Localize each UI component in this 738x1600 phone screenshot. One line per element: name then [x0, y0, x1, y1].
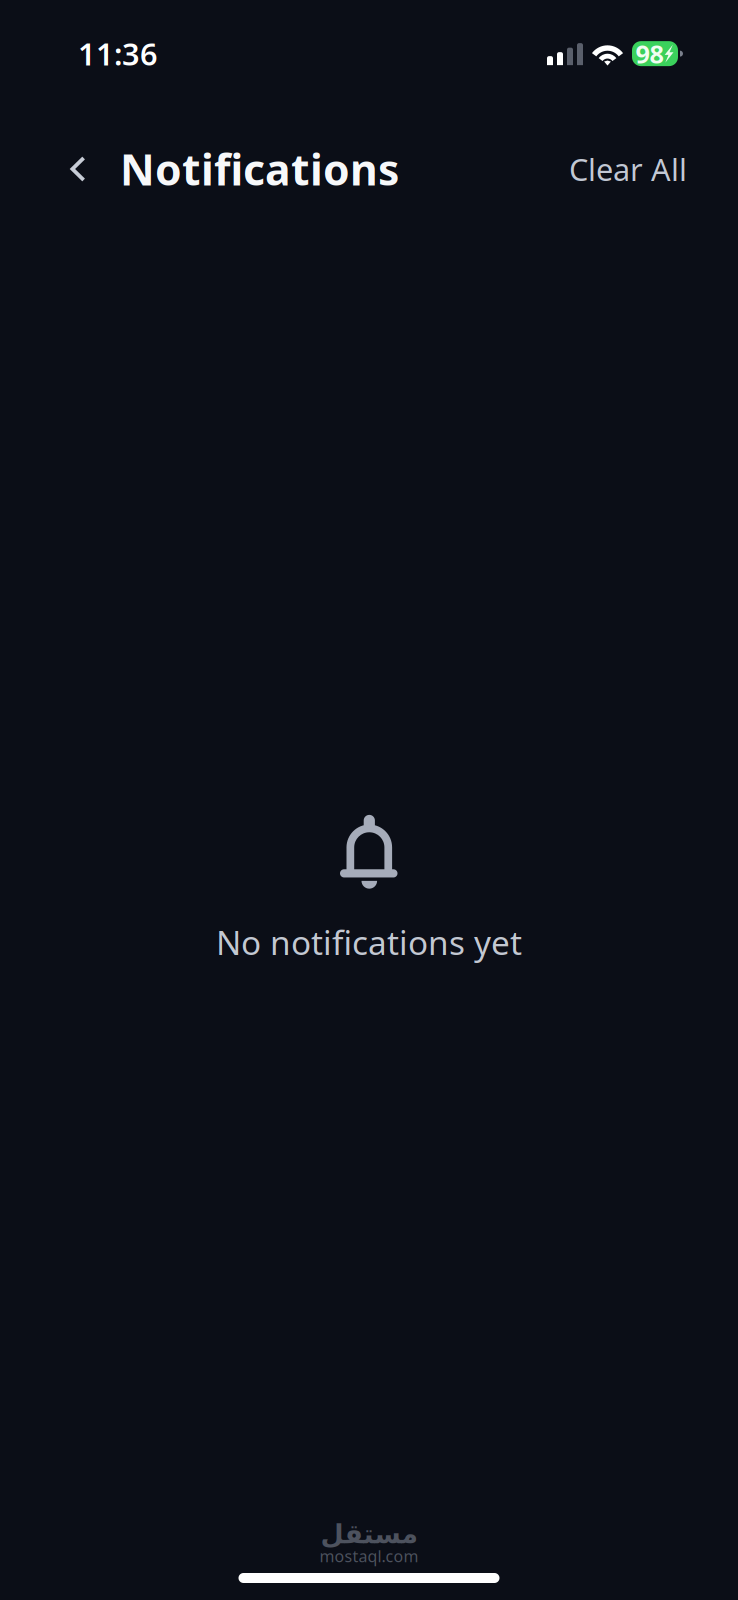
staticText: Notifications	[120, 141, 399, 197]
button[interactable]: Back	[56, 133, 100, 205]
staticText: 11:36	[78, 33, 158, 74]
staticText: مستقل	[320, 1519, 418, 1549]
staticText: 98	[635, 37, 663, 70]
staticText: No notifications yet	[216, 920, 522, 964]
button[interactable]: Clear All	[563, 135, 693, 203]
staticText: mostaql.com	[319, 1545, 418, 1567]
staticText: Clear All	[569, 149, 687, 189]
